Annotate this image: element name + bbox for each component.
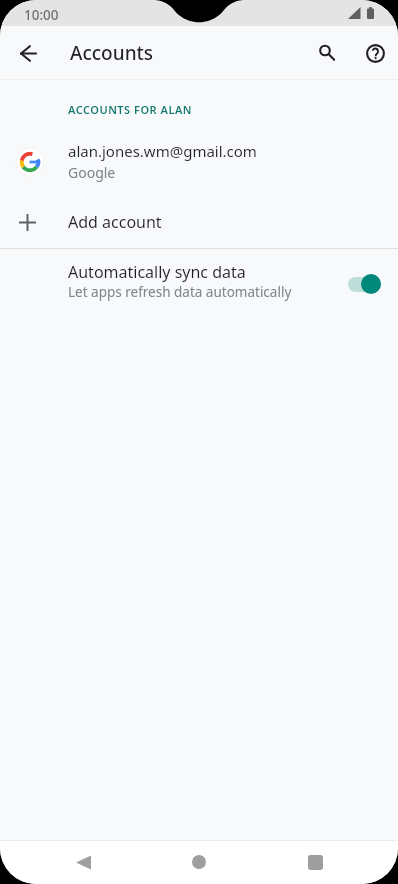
button[interactable]: Help [353, 31, 397, 75]
staticText: Let apps refresh data automatically [68, 283, 292, 301]
button[interactable]: alan.jones.wm@gmail.com [0, 128, 398, 195]
button[interactable]: Add account [0, 195, 398, 248]
staticText: 10:00 [24, 6, 59, 24]
button[interactable]: Back [6, 31, 50, 75]
button[interactable]: Home [141, 840, 257, 884]
staticText: Google [68, 163, 116, 182]
staticText: alan.jones.wm@gmail.com [68, 141, 257, 161]
staticText: Automatically sync data [68, 261, 246, 283]
staticText: Accounts [70, 40, 154, 66]
staticText: ACCOUNTS FOR ALAN [68, 102, 193, 117]
button[interactable]: Back [25, 840, 141, 884]
button[interactable]: Automatically sync data [0, 249, 398, 313]
button[interactable]: Search [305, 31, 349, 75]
staticText: Add account [68, 211, 162, 233]
button[interactable]: Recents [257, 840, 373, 884]
